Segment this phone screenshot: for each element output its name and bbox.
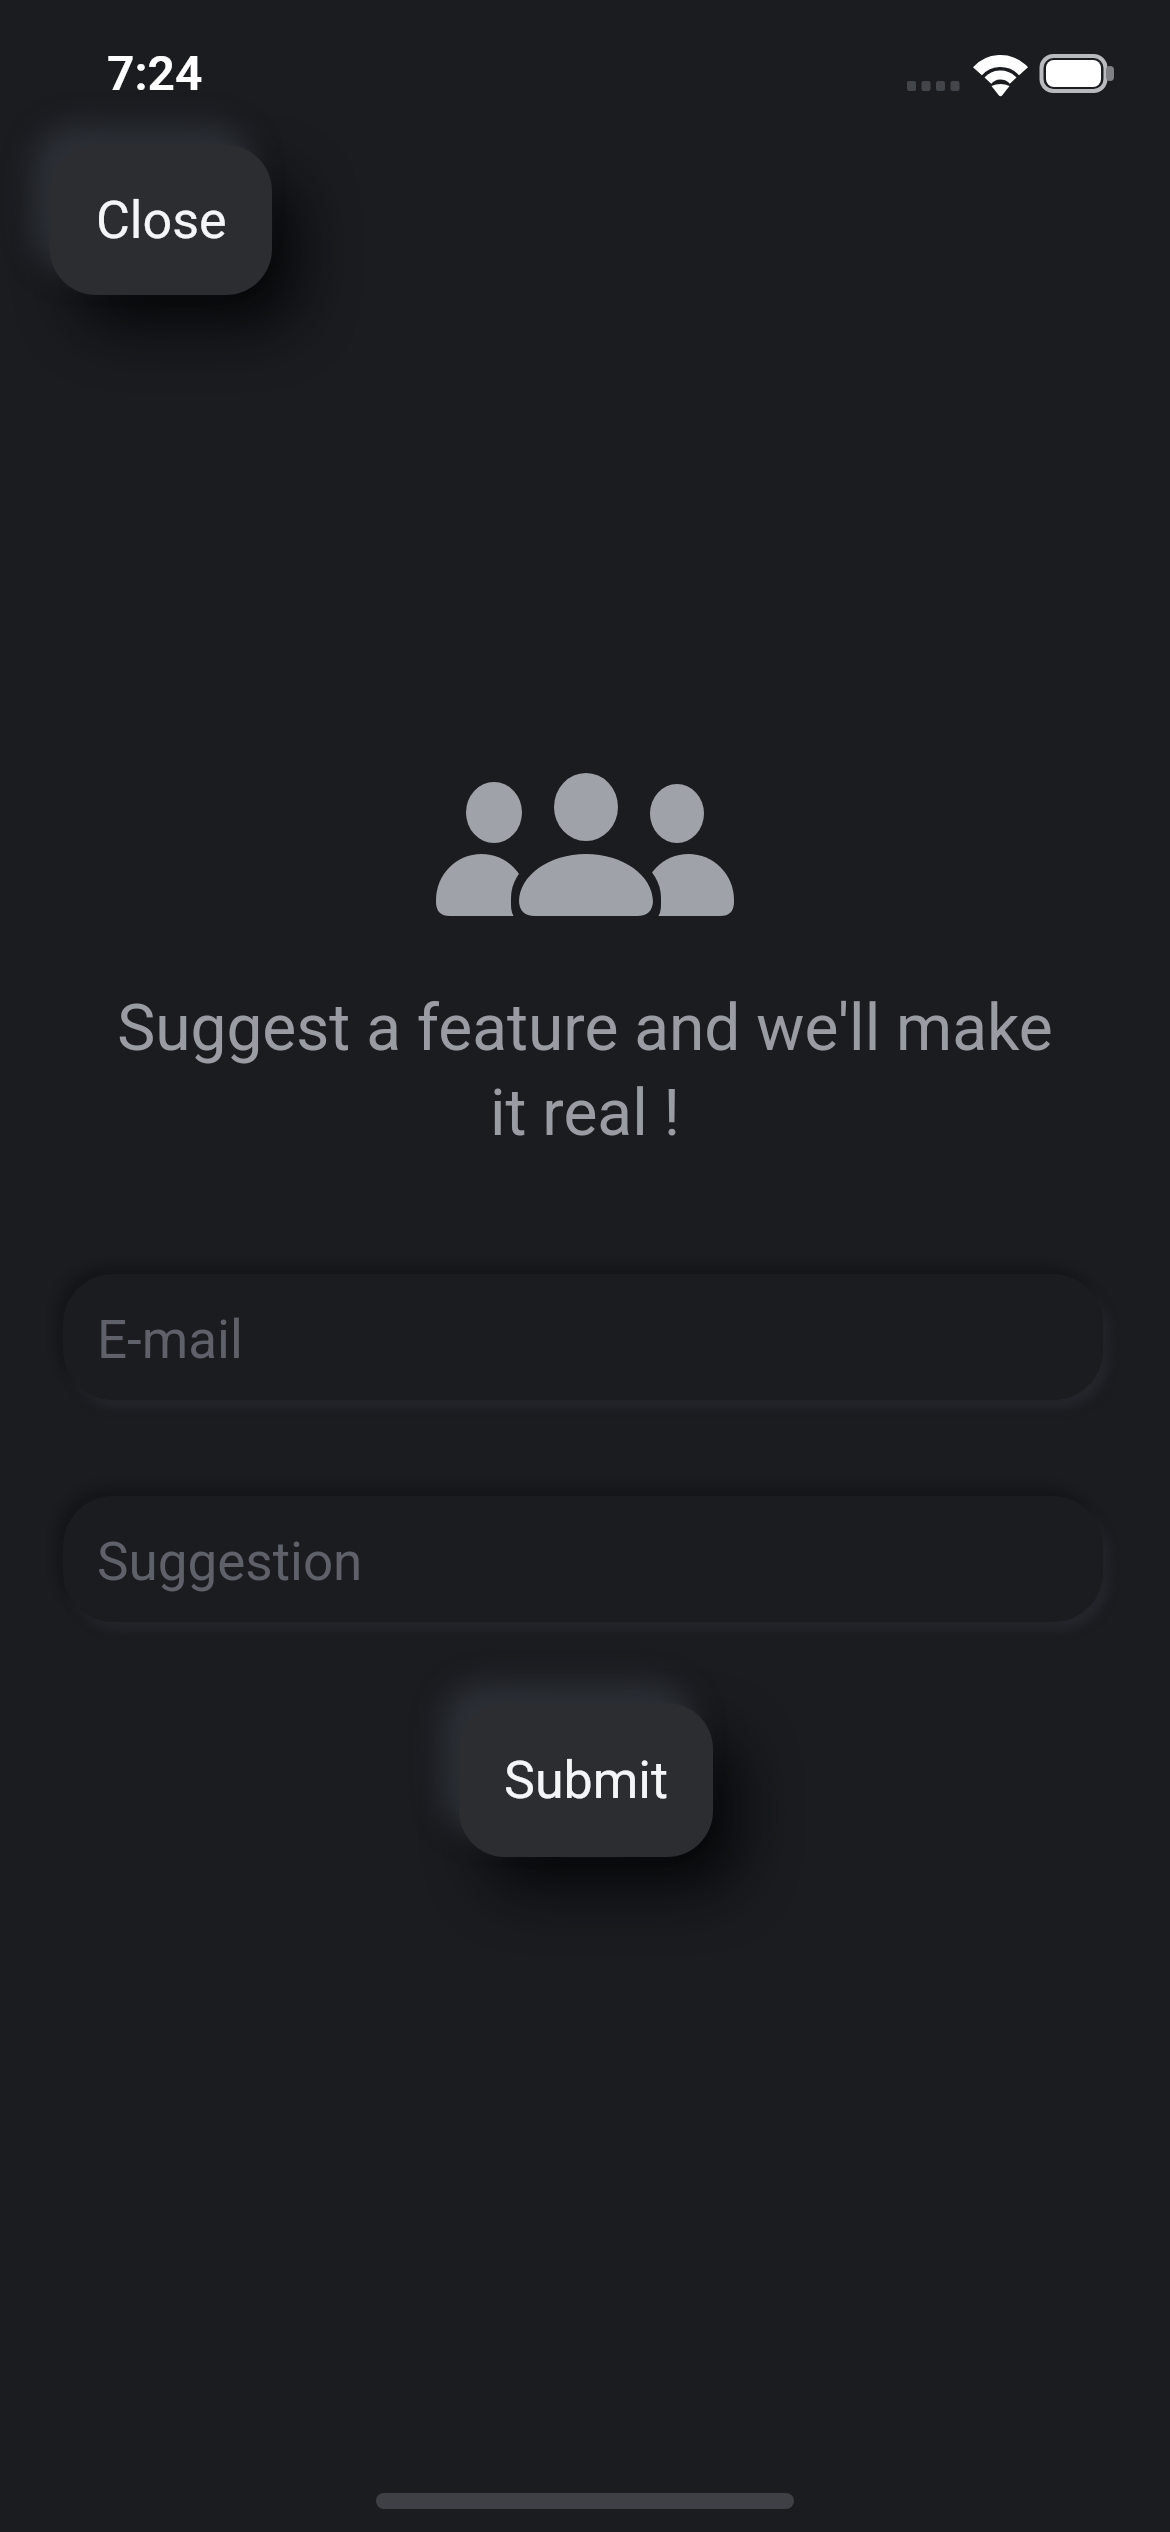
button[interactable]: Submit xyxy=(459,1703,713,1857)
staticText: E-mail xyxy=(97,1309,243,1371)
staticText: Suggestion xyxy=(97,1531,363,1593)
staticText: 7:24 xyxy=(107,45,203,101)
staticText: Submit xyxy=(504,1750,668,1811)
button[interactable]: E-mail xyxy=(63,1274,1103,1400)
staticText: Close xyxy=(96,190,227,251)
staticText: Suggest a feature and we'll make it real… xyxy=(105,991,1065,1150)
button[interactable]: Suggestion xyxy=(63,1496,1103,1622)
button[interactable]: Close xyxy=(50,145,272,295)
